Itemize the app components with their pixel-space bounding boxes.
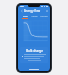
button[interactable]: Settings — [45, 9, 48, 12]
staticText: Energy flow — [24, 9, 41, 13]
staticText: Month — [40, 14, 48, 17]
button[interactable]: Day — [20, 13, 30, 18]
button[interactable]: Week — [30, 13, 39, 18]
staticText: Bulk charge — [26, 49, 43, 53]
staticText: Week — [31, 14, 38, 17]
staticText: Day — [23, 14, 28, 17]
button[interactable]: Month — [39, 13, 48, 18]
button[interactable]: Back — [20, 9, 23, 12]
button[interactable]: Bulk charge — [20, 47, 48, 63]
